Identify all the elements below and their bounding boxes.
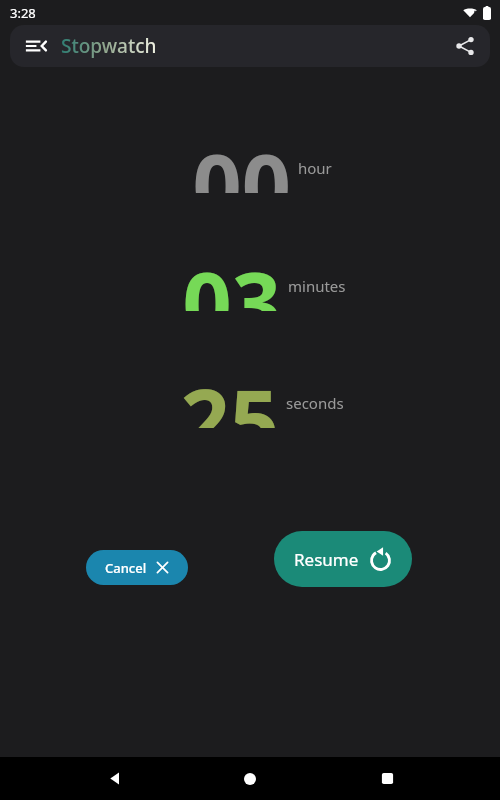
staticText: 00 (192, 125, 291, 193)
staticText: Cancel (105, 559, 147, 577)
staticText: minutes (288, 276, 346, 296)
button[interactable]: Cancel (86, 550, 188, 585)
button[interactable]: Share (447, 28, 483, 64)
staticText: 3:28 (10, 4, 36, 22)
button[interactable]: Resume (274, 531, 412, 587)
button[interactable]: Home (227, 757, 273, 800)
staticText: hour (298, 158, 332, 178)
staticText: seconds (286, 393, 344, 413)
staticText: Resume (294, 548, 359, 571)
staticText: Stopwatch (61, 33, 157, 59)
button[interactable]: Open navigation menu (18, 28, 54, 64)
staticText: 25 (180, 360, 279, 428)
staticText: 03 (182, 243, 281, 311)
button[interactable]: Back (91, 757, 137, 800)
button[interactable]: Recent apps (364, 757, 410, 800)
